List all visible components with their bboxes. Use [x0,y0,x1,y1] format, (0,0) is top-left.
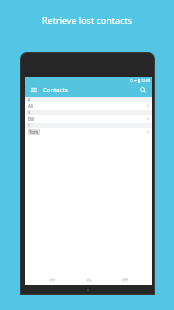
button[interactable]: Recent apps [116,275,134,285]
staticText: 12:00 [141,78,150,83]
staticText: B [28,110,31,115]
staticText: A [28,97,31,102]
staticText: Retrieve lost contacts [42,14,133,26]
button[interactable]: Back [43,275,61,285]
staticText: Ali [28,103,34,109]
staticText: T [28,123,30,128]
button[interactable]: Search [138,85,148,95]
button[interactable]: Open navigation menu [29,85,39,95]
staticText: Contacts [43,86,68,94]
button[interactable]: Tom [25,128,152,136]
staticText: Tom [29,129,39,135]
button[interactable]: Bill [25,115,152,123]
button[interactable]: Home [80,275,98,285]
staticText: Bill [28,116,35,122]
button[interactable]: Ali [25,102,152,110]
